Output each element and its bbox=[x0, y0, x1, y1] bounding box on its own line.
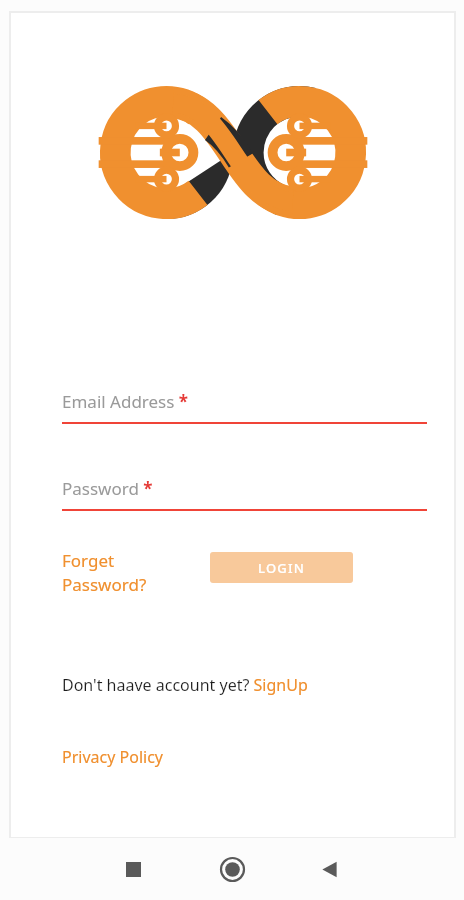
button[interactable]: Email Address * bbox=[62, 390, 427, 424]
button[interactable]: Back bbox=[312, 852, 346, 886]
button[interactable]: Privacy Policy bbox=[62, 746, 163, 768]
staticText: Email Address * bbox=[62, 390, 189, 413]
staticText: Privacy Policy bbox=[62, 746, 163, 768]
button[interactable]: Password * bbox=[62, 477, 427, 511]
button[interactable]: Recent apps bbox=[116, 852, 150, 886]
staticText: LOGIN bbox=[258, 559, 306, 577]
staticText: Password * bbox=[62, 477, 153, 500]
staticText: Forget Password? bbox=[62, 549, 147, 596]
button[interactable]: LOGIN bbox=[210, 552, 353, 583]
staticText: Don't haave account yet? SignUp bbox=[62, 674, 308, 696]
button[interactable]: Home bbox=[215, 852, 249, 886]
button[interactable]: Forget Password? bbox=[62, 549, 192, 596]
button[interactable]: Don't haave account yet? SignUp bbox=[62, 674, 308, 696]
